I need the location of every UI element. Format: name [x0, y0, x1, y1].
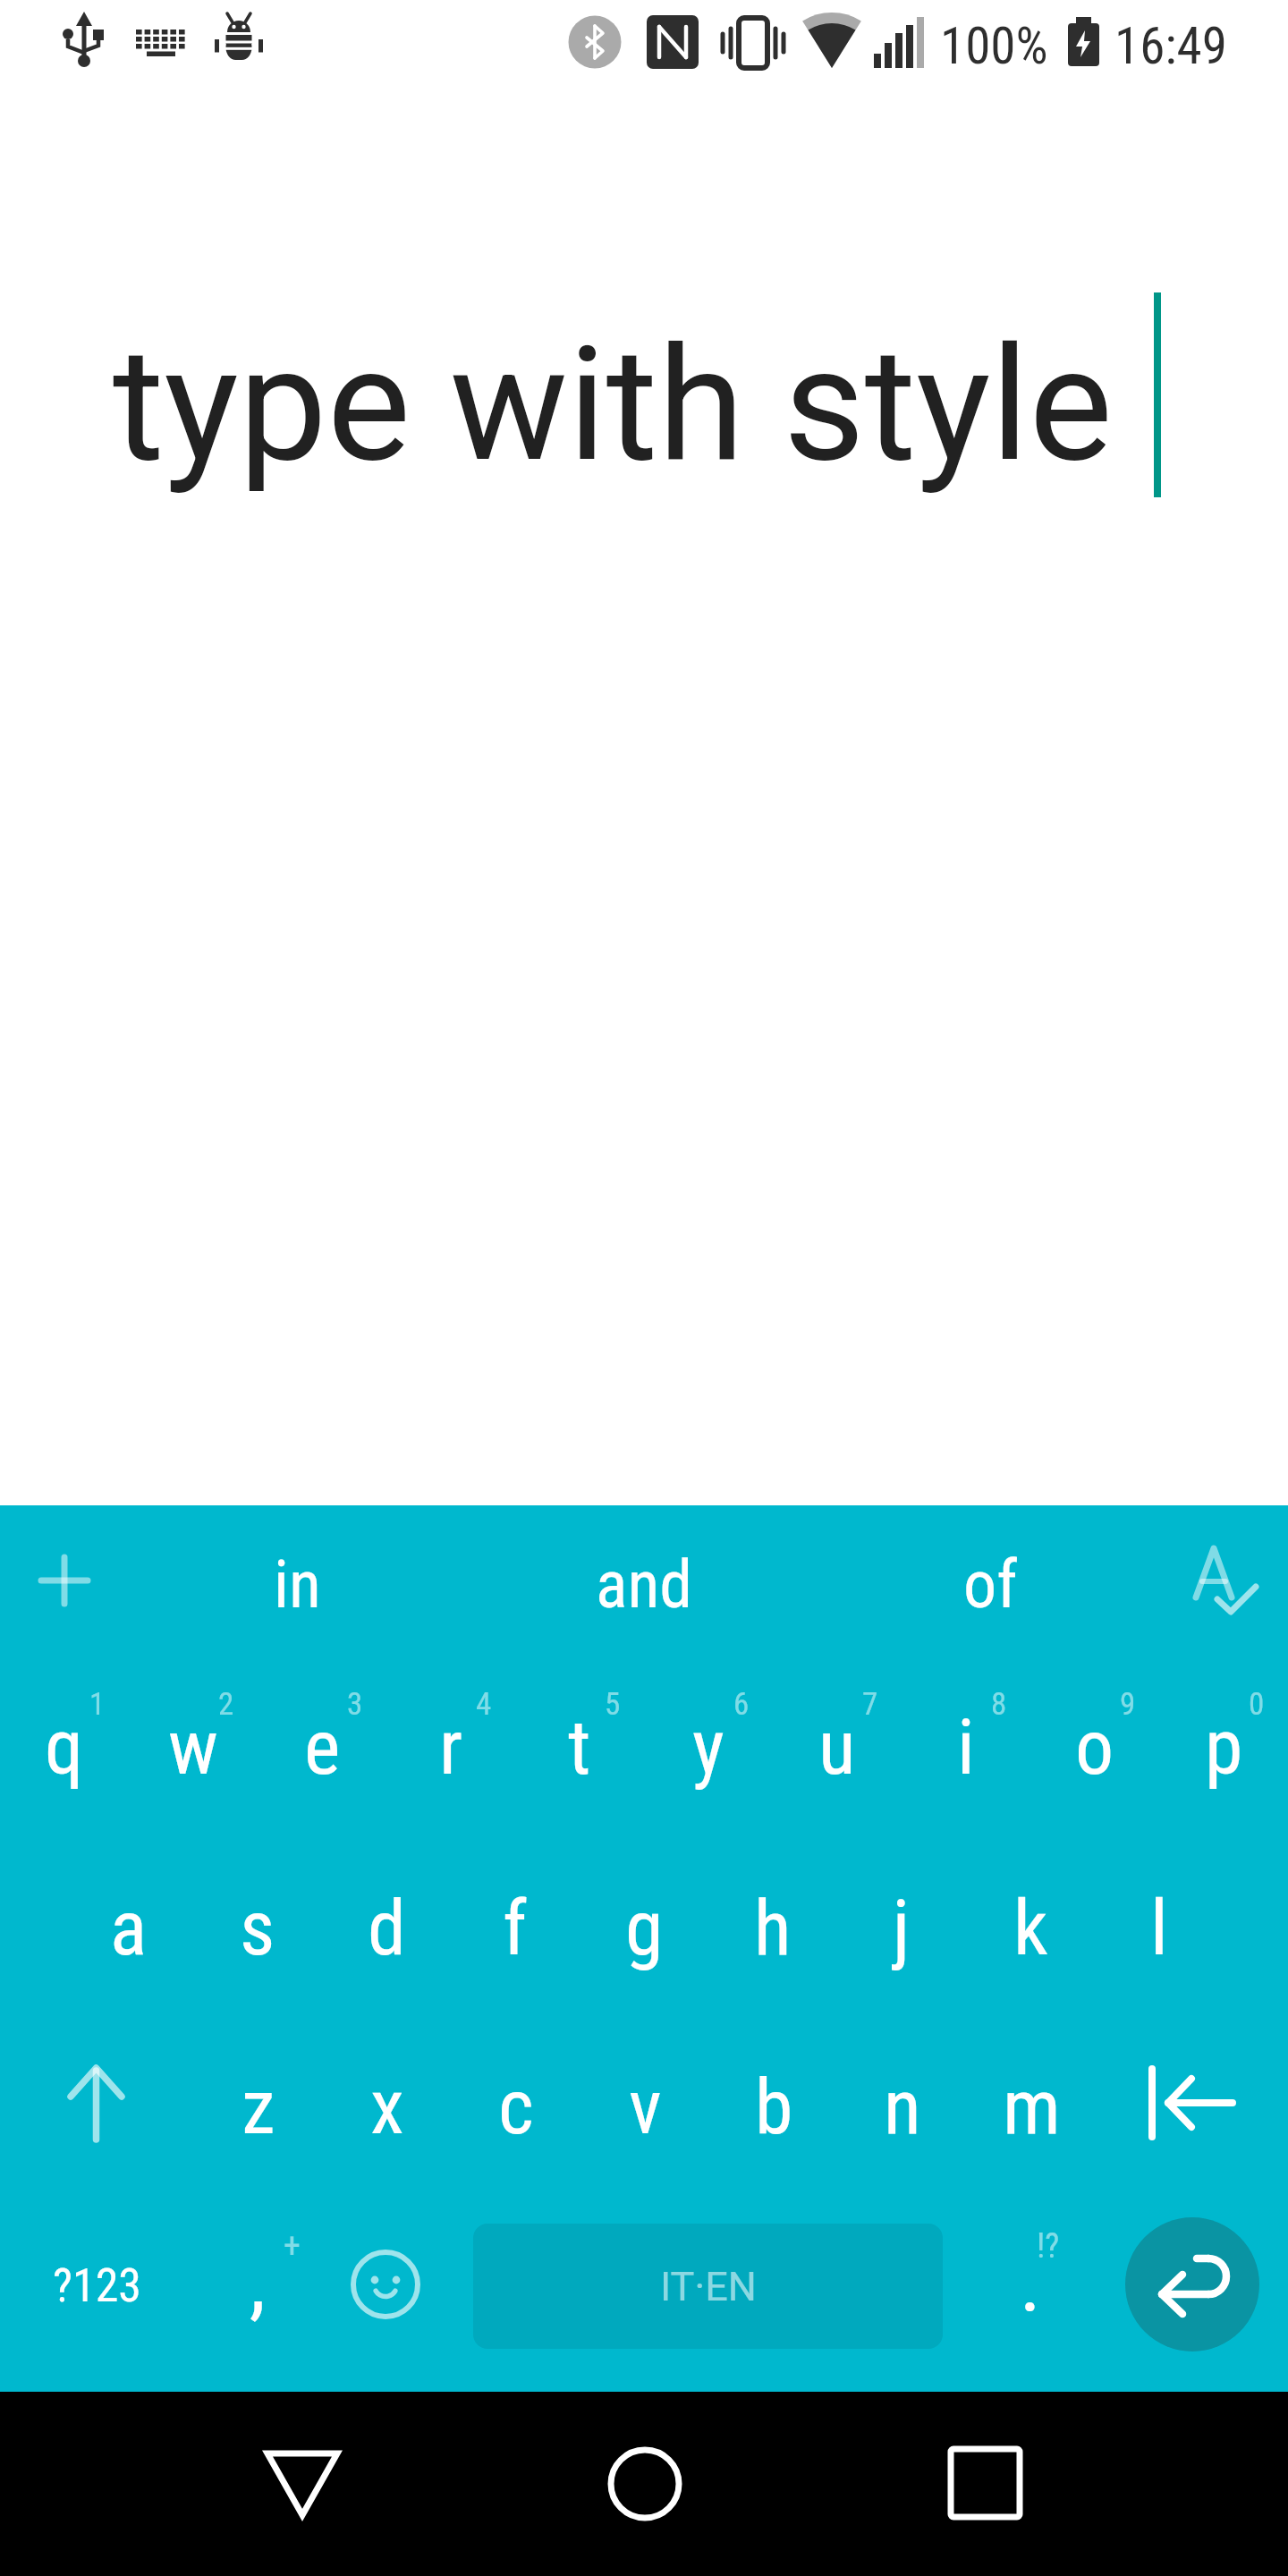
- staticText: IT·EN: [660, 2263, 757, 2310]
- button[interactable]: i: [902, 1664, 1030, 1845]
- button[interactable]: p: [1159, 1664, 1288, 1845]
- button[interactable]: k: [966, 1845, 1095, 2028]
- button[interactable]: d: [322, 1845, 451, 2028]
- button[interactable]: of: [818, 1505, 1163, 1664]
- button[interactable]: o: [1030, 1664, 1159, 1845]
- button[interactable]: [0, 86, 1288, 1505]
- staticText: and: [596, 1546, 693, 1623]
- staticText: 5: [605, 1686, 621, 1722]
- button[interactable]: [215, 2392, 501, 2576]
- staticText: 0: [1249, 1686, 1265, 1722]
- button[interactable]: ?123: [0, 2209, 193, 2392]
- staticText: 9: [1120, 1686, 1136, 1722]
- button[interactable]: [1095, 2028, 1288, 2209]
- staticText: of: [963, 1546, 1018, 1623]
- staticText: u: [818, 1702, 856, 1792]
- staticText: type with style: [113, 313, 1113, 497]
- button[interactable]: [787, 2392, 1073, 2576]
- button[interactable]: f: [451, 1845, 580, 2028]
- staticText: o: [1075, 1702, 1114, 1792]
- button[interactable]: .: [966, 2209, 1095, 2392]
- staticText: !?: [1037, 2226, 1060, 2262]
- button[interactable]: s: [193, 1845, 322, 2028]
- button[interactable]: ,: [193, 2209, 322, 2392]
- button[interactable]: g: [580, 1845, 708, 2028]
- staticText: 3: [347, 1686, 363, 1722]
- staticText: t: [568, 1702, 591, 1792]
- staticText: p: [1205, 1702, 1243, 1792]
- staticText: f: [503, 1883, 528, 1973]
- button[interactable]: b: [709, 2028, 838, 2209]
- button[interactable]: t: [515, 1664, 644, 1845]
- button[interactable]: in: [125, 1505, 470, 1664]
- button[interactable]: u: [773, 1664, 902, 1845]
- staticText: 1: [89, 1686, 106, 1722]
- staticText: 4: [476, 1686, 492, 1722]
- button[interactable]: q: [0, 1664, 129, 1845]
- button[interactable]: y: [644, 1664, 773, 1845]
- staticText: g: [625, 1883, 664, 1973]
- staticText: y: [692, 1702, 724, 1792]
- staticText: ,: [250, 2236, 266, 2330]
- staticText: r: [439, 1702, 463, 1792]
- staticText: d: [368, 1883, 406, 1973]
- staticText: 100%: [940, 16, 1048, 70]
- staticText: l: [1150, 1883, 1168, 1973]
- staticText: w: [168, 1702, 218, 1792]
- staticText: +: [284, 2226, 301, 2262]
- button[interactable]: [501, 2392, 787, 2576]
- staticText: 6: [733, 1686, 750, 1722]
- button[interactable]: c: [452, 2028, 580, 2209]
- staticText: n: [884, 2062, 921, 2152]
- staticText: a: [110, 1883, 148, 1973]
- staticText: i: [957, 1702, 975, 1792]
- staticText: s: [240, 1883, 275, 1973]
- button[interactable]: z: [194, 2028, 323, 2209]
- button[interactable]: [0, 1505, 129, 1664]
- button[interactable]: j: [837, 1845, 966, 2028]
- staticText: 7: [862, 1686, 878, 1722]
- staticText: e: [304, 1702, 341, 1792]
- button[interactable]: n: [838, 2028, 967, 2209]
- button[interactable]: l: [1095, 1845, 1224, 2028]
- button[interactable]: r: [386, 1664, 515, 1845]
- staticText: k: [1013, 1883, 1048, 1973]
- button[interactable]: [322, 2209, 451, 2392]
- button[interactable]: a: [64, 1845, 193, 2028]
- button[interactable]: and: [470, 1505, 818, 1664]
- button[interactable]: v: [580, 2028, 709, 2209]
- staticText: in: [274, 1546, 321, 1623]
- button[interactable]: IT·EN: [473, 2224, 943, 2349]
- staticText: v: [629, 2062, 662, 2152]
- staticText: h: [754, 1883, 792, 1973]
- staticText: b: [755, 2062, 793, 2152]
- staticText: m: [1003, 2062, 1061, 2152]
- staticText: 2: [218, 1686, 234, 1722]
- button[interactable]: [0, 2028, 194, 2209]
- button[interactable]: w: [129, 1664, 258, 1845]
- staticText: .: [1020, 2236, 1041, 2330]
- staticText: q: [45, 1702, 84, 1792]
- button[interactable]: m: [967, 2028, 1096, 2209]
- button[interactable]: e: [258, 1664, 386, 1845]
- staticText: c: [498, 2062, 534, 2152]
- staticText: 8: [991, 1686, 1007, 1722]
- staticText: 16:49: [1114, 16, 1227, 70]
- staticText: ?123: [53, 2258, 141, 2313]
- button[interactable]: [1125, 2217, 1259, 2351]
- button[interactable]: h: [708, 1845, 837, 2028]
- staticText: x: [370, 2062, 404, 2152]
- button[interactable]: [1159, 1505, 1288, 1664]
- button[interactable]: x: [323, 2028, 452, 2209]
- staticText: j: [893, 1883, 911, 1973]
- staticText: z: [241, 2062, 275, 2152]
